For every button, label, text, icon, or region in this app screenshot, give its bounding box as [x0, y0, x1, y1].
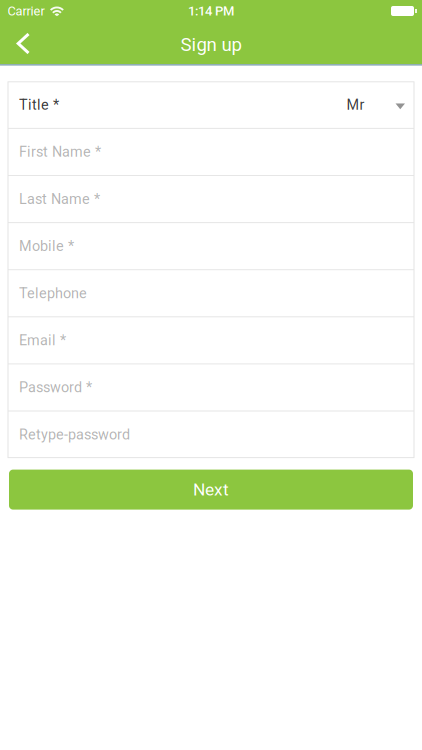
button[interactable]: Last Name * — [8, 176, 414, 222]
button[interactable]: Telephone — [8, 270, 414, 316]
staticText: First Name * — [19, 143, 101, 160]
staticText: Last Name * — [19, 191, 100, 207]
staticText: Email * — [19, 332, 66, 349]
staticText: Telephone — [19, 285, 87, 302]
button[interactable]: First Name * — [8, 129, 414, 175]
button[interactable]: Back — [0, 21, 52, 63]
staticText: 1:14 PM — [188, 3, 234, 19]
staticText: Password * — [19, 379, 92, 396]
staticText: Mobile * — [19, 238, 74, 255]
button[interactable]: Password * — [8, 364, 414, 410]
button[interactable]: Email * — [8, 317, 414, 363]
staticText: Sign up — [180, 34, 241, 55]
button[interactable]: Mobile * — [8, 223, 414, 269]
button[interactable]: Next — [9, 470, 413, 510]
button[interactable]: Title * — [8, 82, 414, 128]
button[interactable]: Retype-password — [8, 411, 414, 458]
staticText: Title * — [19, 96, 59, 113]
staticText: Next — [193, 479, 229, 500]
staticText: Carrier — [7, 3, 44, 18]
staticText: Retype-password — [19, 426, 130, 443]
staticText: Mr — [346, 96, 364, 113]
